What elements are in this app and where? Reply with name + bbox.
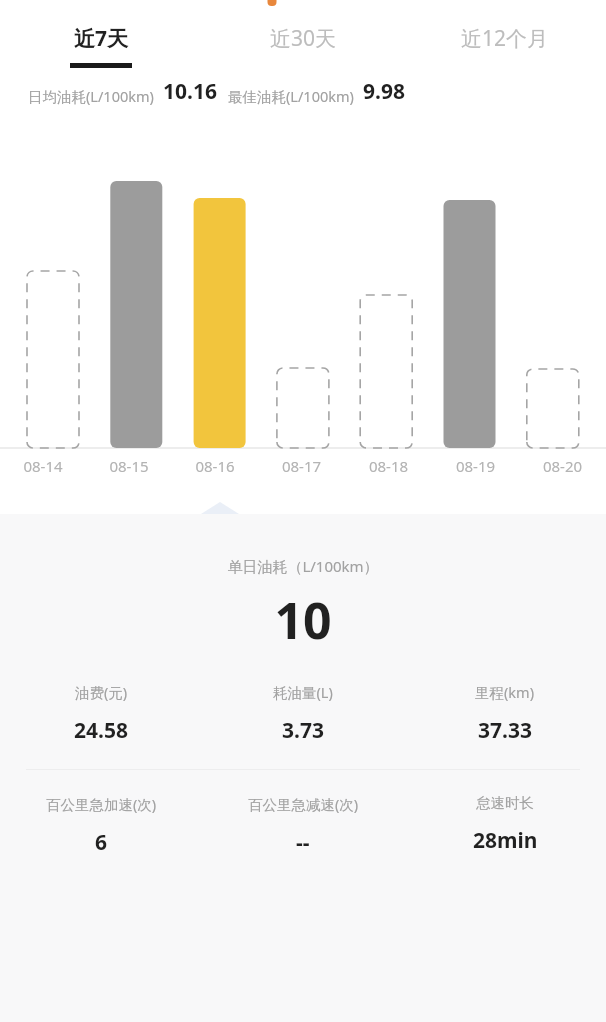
staticText: 3.73 bbox=[282, 716, 324, 745]
button[interactable]: 耗油量(L) bbox=[202, 682, 404, 745]
staticText: 里程(km) bbox=[475, 682, 535, 702]
staticText: 08-16 bbox=[172, 456, 258, 476]
staticText: 08-19 bbox=[432, 456, 519, 476]
button[interactable]: 近12个月 bbox=[404, 7, 606, 73]
staticText: 37.33 bbox=[478, 716, 532, 745]
staticText: 08-20 bbox=[519, 456, 606, 476]
staticText: 24.58 bbox=[74, 716, 128, 745]
staticText: 08-15 bbox=[86, 456, 172, 476]
button[interactable]: 近7天 bbox=[0, 7, 202, 73]
staticText: 10 bbox=[0, 586, 606, 654]
button[interactable]: 里程(km) bbox=[404, 682, 606, 745]
staticText: 10.16 bbox=[163, 77, 217, 106]
staticText: 08-14 bbox=[0, 456, 86, 476]
button[interactable]: 油费(元) bbox=[0, 682, 202, 745]
staticText: 08-17 bbox=[258, 456, 345, 476]
button[interactable]: 怠速时长 bbox=[404, 794, 606, 855]
staticText: 近7天 bbox=[74, 24, 129, 53]
staticText: 6 bbox=[95, 828, 108, 857]
staticText: 日均油耗(L/100km) bbox=[28, 86, 154, 106]
staticText: 油费(元) bbox=[75, 682, 128, 702]
staticText: 28min bbox=[473, 826, 538, 855]
staticText: 单日油耗（L/100km） bbox=[0, 556, 606, 576]
staticText: 近12个月 bbox=[461, 24, 549, 53]
button[interactable]: 近30天 bbox=[202, 7, 404, 73]
staticText: 百公里急加速(次) bbox=[46, 794, 157, 814]
button[interactable]: 百公里急加速(次) bbox=[0, 794, 202, 857]
staticText: 9.98 bbox=[363, 77, 405, 106]
staticText: 耗油量(L) bbox=[273, 682, 333, 702]
button[interactable]: 百公里急减速(次) bbox=[202, 794, 404, 857]
staticText: -- bbox=[296, 828, 310, 857]
staticText: 怠速时长 bbox=[476, 794, 534, 812]
staticText: 百公里急减速(次) bbox=[248, 794, 359, 814]
staticText: 近30天 bbox=[270, 24, 337, 53]
staticText: 最佳油耗(L/100km) bbox=[228, 86, 354, 106]
staticText: 08-18 bbox=[345, 456, 432, 476]
